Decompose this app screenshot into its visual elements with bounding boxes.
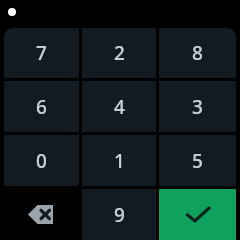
staticText: 3 (192, 94, 203, 120)
button[interactable]: 9 (82, 189, 156, 240)
button[interactable]: 4 (82, 81, 156, 132)
staticText: 5 (192, 148, 203, 174)
button[interactable]: 0 (4, 135, 79, 186)
staticText: 6 (36, 94, 47, 120)
button[interactable]: 5 (159, 135, 236, 186)
button[interactable]: 8 (159, 28, 236, 78)
button[interactable]: Backspace (4, 189, 79, 240)
button[interactable]: 6 (4, 81, 79, 132)
staticText: 2 (114, 40, 125, 66)
button[interactable]: 1 (82, 135, 156, 186)
staticText: 8 (192, 40, 203, 66)
staticText: 4 (114, 94, 125, 120)
staticText: 0 (36, 148, 47, 174)
button[interactable]: 2 (82, 28, 156, 78)
button[interactable]: Confirm (159, 189, 236, 240)
staticText: 1 (114, 148, 125, 174)
staticText: 7 (36, 40, 47, 66)
button[interactable]: 3 (159, 81, 236, 132)
button[interactable]: 7 (4, 28, 79, 78)
staticText: 9 (114, 202, 125, 228)
